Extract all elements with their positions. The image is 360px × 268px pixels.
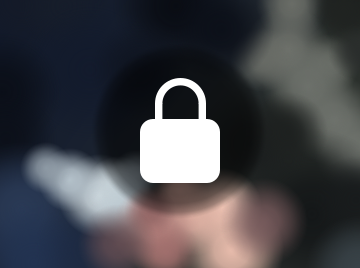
button[interactable]: Locked (0, 0, 360, 268)
